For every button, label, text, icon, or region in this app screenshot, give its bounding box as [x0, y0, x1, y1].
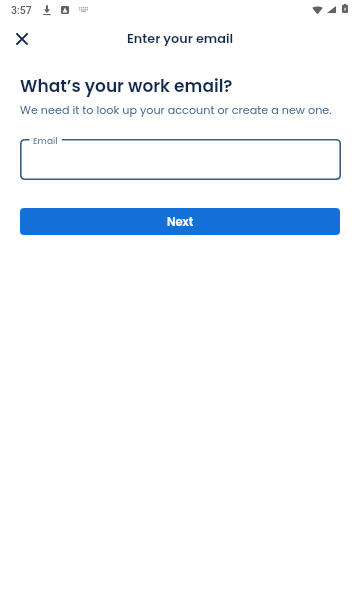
staticText: Next [167, 214, 194, 230]
staticText: What’s your work email? [20, 74, 233, 98]
staticText: 3:57 [11, 4, 32, 16]
staticText: We need it to look up your account or cr… [20, 102, 332, 118]
staticText: Email [33, 135, 58, 148]
button[interactable] [20, 139, 341, 180]
button[interactable]: Next [20, 208, 340, 235]
staticText: Enter your email [127, 30, 234, 48]
button[interactable]: Close [8, 25, 36, 53]
